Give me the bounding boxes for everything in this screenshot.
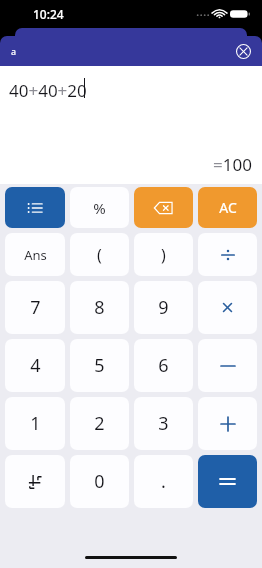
staticText: 5	[94, 353, 105, 378]
button[interactable]: Equals	[198, 455, 257, 508]
button[interactable]: History	[5, 187, 65, 228]
button[interactable]: a	[0, 36, 262, 66]
button[interactable]: )	[134, 233, 193, 276]
button[interactable]: 6	[134, 339, 193, 392]
staticText: 4	[30, 353, 41, 378]
staticText: .	[161, 469, 166, 494]
staticText: 8	[94, 295, 105, 320]
button[interactable]: (	[70, 233, 129, 276]
button[interactable]: 7	[5, 281, 65, 334]
button[interactable]: 9	[134, 281, 193, 334]
button[interactable]: %	[70, 187, 129, 228]
button[interactable]: 2	[70, 397, 129, 450]
button[interactable]: Divide	[198, 233, 257, 276]
staticText: %	[93, 198, 106, 218]
button[interactable]: Transform	[5, 455, 65, 508]
button[interactable]: 4	[5, 339, 65, 392]
staticText: 6	[158, 353, 169, 378]
staticText: 40+40+20	[9, 79, 87, 102]
staticText: 9	[158, 295, 169, 320]
button[interactable]: 8	[70, 281, 129, 334]
staticText: 1	[30, 411, 41, 436]
button[interactable]: Backspace	[134, 187, 193, 228]
staticText: 3	[158, 411, 169, 436]
staticText: 0	[94, 469, 105, 494]
staticText: AC	[219, 198, 237, 217]
staticText: 2	[94, 411, 105, 436]
staticText: (	[97, 244, 102, 266]
staticText: a	[11, 45, 17, 57]
button[interactable]: AC	[198, 187, 257, 228]
button[interactable]: 5	[70, 339, 129, 392]
button[interactable]: Add	[198, 397, 257, 450]
staticText: =100	[213, 153, 252, 176]
staticText: Ans	[24, 246, 47, 264]
button[interactable]: 3	[134, 397, 193, 450]
button[interactable]: Ans	[5, 233, 65, 276]
staticText: 7	[30, 295, 41, 320]
button[interactable]: .	[134, 455, 193, 508]
button[interactable]: 0	[70, 455, 129, 508]
button[interactable]: Subtract	[198, 339, 257, 392]
button[interactable]: Close tab	[232, 40, 254, 62]
staticText: )	[161, 244, 166, 266]
button[interactable]: Multiply	[198, 281, 257, 334]
button[interactable]: 1	[5, 397, 65, 450]
staticText: 10:24	[33, 6, 64, 22]
